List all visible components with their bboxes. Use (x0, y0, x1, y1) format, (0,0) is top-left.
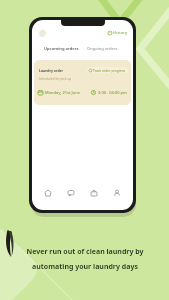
button[interactable]: Cart (87, 186, 101, 200)
button[interactable]: Upcoming orders (44, 44, 79, 54)
button[interactable]: Profile (38, 29, 46, 37)
button[interactable]: Profile (110, 186, 124, 200)
staticText: Track order progress (93, 68, 126, 72)
button[interactable]: History (108, 30, 128, 36)
button[interactable]: Ongoing orders (87, 44, 118, 54)
button[interactable]: Laundry order (34, 60, 131, 105)
button[interactable]: Messages (64, 186, 78, 200)
staticText: Scheduled for pick up (39, 77, 72, 81)
button[interactable]: Home (41, 186, 55, 200)
staticText: History (113, 30, 128, 36)
staticText: 3:00 - 04:00 pm (98, 90, 127, 95)
staticText: Laundry order (39, 68, 64, 73)
staticText: Monday, 21st June (45, 90, 81, 95)
button[interactable]: Track order progress (87, 67, 128, 73)
staticText: Never run out of clean laundry by automa… (26, 247, 144, 271)
